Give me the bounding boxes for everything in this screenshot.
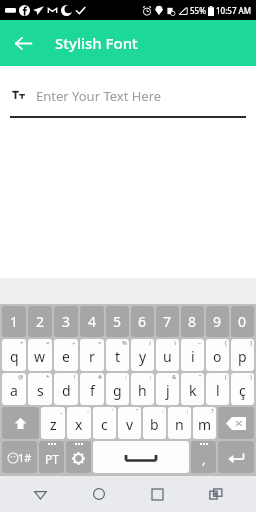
staticText: q [10,347,19,366]
button[interactable]: Language [39,441,64,473]
staticText: o [213,347,222,366]
staticText: % [122,339,127,347]
button[interactable]: - [67,407,91,439]
staticText: b [150,415,159,434]
button[interactable]: Backspace [218,407,254,439]
button[interactable]: & [156,373,179,405]
staticText: & [172,373,177,381]
staticText: , [202,450,206,468]
button[interactable]: + [2,339,26,371]
button[interactable]: / [131,339,154,371]
button[interactable]: Space [93,441,189,473]
staticText: r [89,347,95,366]
staticText: ) [250,373,252,381]
button[interactable]: * [28,373,52,405]
button[interactable]: 1 [2,306,26,337]
button[interactable]: Shift [2,407,39,439]
staticText: 7 [163,312,172,331]
button[interactable]: 7 [156,306,179,337]
staticText: 5 [113,312,122,331]
button[interactable]: : [106,373,129,405]
button[interactable]: = [80,339,104,371]
staticText: t [115,347,121,366]
button[interactable]: [ [206,339,229,371]
staticText: 10:57 AM [216,5,252,16]
staticText: Enter Your Text Here [36,87,162,105]
staticText: 9 [213,312,222,331]
button[interactable]: \ [156,339,179,371]
button[interactable]: 5 [106,306,129,337]
button[interactable]: : [143,407,166,439]
button[interactable]: 3 [54,306,78,337]
staticText: a [10,381,18,400]
staticText: ÷ [72,339,76,347]
button[interactable]: 4 [80,306,104,337]
button[interactable]: ] [231,339,254,371]
button[interactable]: Switch apps [198,476,234,512]
button[interactable]: 6 [131,306,154,337]
button[interactable]: 2 [28,306,52,337]
staticText: = [98,339,102,347]
staticText: u [163,347,172,366]
button[interactable]: " [118,407,141,439]
staticText: ç [239,381,246,400]
staticText: w [34,347,46,366]
staticText: * [46,373,50,381]
button[interactable]: " [181,373,204,405]
staticText: e [62,347,70,366]
button[interactable]: ) [231,373,254,405]
staticText: y [139,347,147,366]
button[interactable]: # [80,373,104,405]
button[interactable]: Back [6,26,40,60]
staticText: d [62,381,71,400]
button[interactable]: ; [131,373,154,405]
button[interactable]: × [28,339,52,371]
staticText: c [101,415,108,434]
button[interactable]: Recents [139,476,175,512]
staticText: v [126,415,134,434]
button[interactable]: 0 [231,306,254,337]
button[interactable]: Enter [218,441,254,473]
button[interactable]: _ [41,407,65,439]
staticText: ] [250,339,252,347]
button[interactable]: 9 [206,306,229,337]
staticText: ; [187,407,189,415]
staticText: PT [45,451,59,467]
button[interactable]: % [106,339,129,371]
staticText: 1 [10,312,19,331]
staticText: z [50,415,57,434]
button[interactable]: @ [2,373,26,405]
staticText: 4 [88,312,97,331]
button[interactable]: 8 [181,306,204,337]
button[interactable]: ( [206,373,229,405]
staticText: n [175,415,184,434]
staticText: # [98,373,102,381]
staticText: × [46,339,50,347]
button[interactable]: Comma [191,441,216,473]
staticText: k [189,381,197,400]
staticText: / [149,339,152,347]
button[interactable]: ~ [181,339,204,371]
staticText: 2 [36,312,45,331]
staticText: ; [150,373,152,381]
staticText: ! [74,373,76,381]
staticText: s [37,381,44,400]
button[interactable]: Symbols [2,441,37,473]
button[interactable]: Home [81,476,117,512]
staticText: 1# [18,450,32,465]
button[interactable]: Settings [66,441,91,473]
button[interactable]: ? [193,407,216,439]
button[interactable]: ÷ [54,339,78,371]
staticText: f [90,381,95,400]
staticText: : [125,373,127,381]
button[interactable]: Enter Your Text Here [10,82,246,110]
button[interactable]: ! [54,373,78,405]
staticText: 6 [138,312,147,331]
staticText: g [113,381,122,400]
staticText: ? [211,407,214,415]
staticText: " [136,407,139,415]
button[interactable]: Back [22,476,58,512]
button[interactable]: ; [168,407,191,439]
staticText: m [198,415,212,434]
button[interactable]: ' [93,407,116,439]
